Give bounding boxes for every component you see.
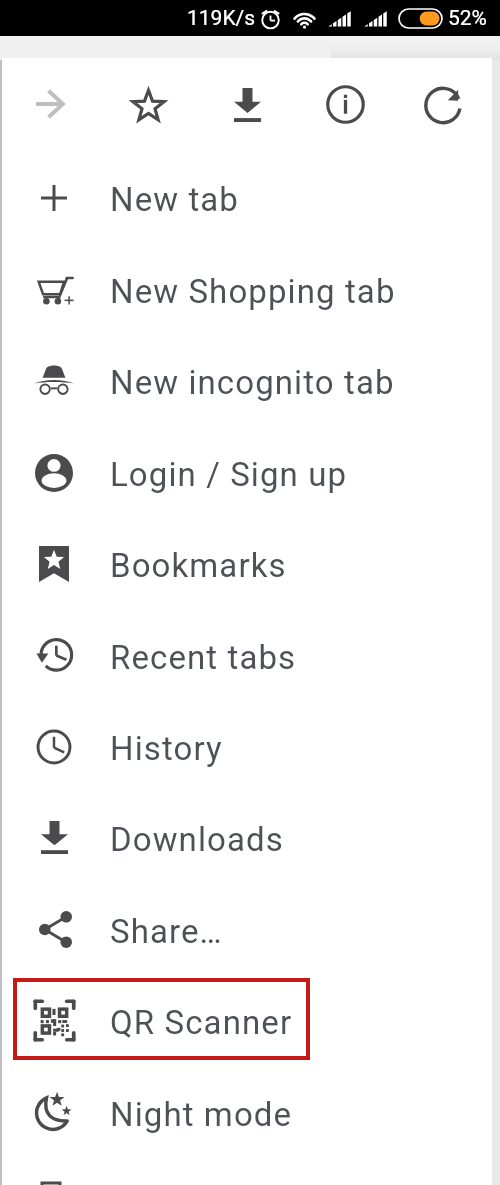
staticText: New Shopping tab <box>110 272 396 311</box>
button[interactable]: New Shopping tab <box>2 244 492 335</box>
staticText: Bookmarks <box>110 546 287 585</box>
button[interactable]: Reload <box>404 73 482 135</box>
staticText: 119K/s <box>187 6 256 31</box>
button[interactable]: Share… <box>2 884 492 975</box>
button[interactable]: History <box>2 701 492 792</box>
staticText: Downloads <box>110 820 284 859</box>
button[interactable]: Bookmark <box>109 73 187 135</box>
staticText: New incognito tab <box>110 363 395 402</box>
staticText: Login / Sign up <box>110 455 348 494</box>
button[interactable]: Forward <box>10 73 88 135</box>
button[interactable]: New incognito tab <box>2 335 492 426</box>
button[interactable]: QR Scanner <box>2 975 492 1066</box>
button[interactable]: Page info <box>306 73 384 135</box>
button[interactable]: Recent tabs <box>2 610 492 701</box>
button[interactable]: Downloads <box>2 792 492 883</box>
button[interactable]: Download <box>208 73 286 135</box>
button[interactable]: Bookmarks <box>2 518 492 609</box>
button[interactable]: New tab <box>2 152 492 243</box>
staticText: History <box>110 729 223 768</box>
staticText: New tab <box>110 180 240 219</box>
staticText: 52% <box>448 6 487 31</box>
staticText: QR Scanner <box>110 1003 293 1042</box>
button[interactable]: Night mode <box>2 1067 492 1158</box>
staticText: Share… <box>110 912 223 951</box>
staticText: Night mode <box>110 1095 293 1134</box>
button[interactable]: Login / Sign up <box>2 427 492 518</box>
staticText: Recent tabs <box>110 638 297 677</box>
